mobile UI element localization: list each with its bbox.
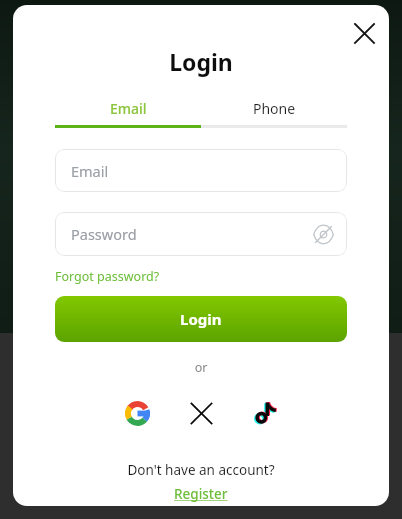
button[interactable]: Email <box>55 149 347 192</box>
staticText: Login <box>180 309 222 329</box>
button[interactable]: Register <box>174 485 228 503</box>
button[interactable]: Login <box>55 296 347 342</box>
button[interactable]: Email <box>55 99 201 118</box>
button[interactable]: Phone <box>201 99 347 118</box>
staticText: Register <box>174 485 228 503</box>
staticText: Email <box>71 161 109 181</box>
staticText: Forgot password? <box>55 268 160 285</box>
button[interactable]: Show password <box>307 218 339 250</box>
button[interactable]: Forgot password? <box>55 268 160 285</box>
button[interactable]: Sign in with X <box>179 391 223 435</box>
staticText: Password <box>71 224 137 244</box>
staticText: Don't have an account? <box>13 461 389 479</box>
staticText: or <box>13 359 389 376</box>
staticText: Phone <box>253 99 296 118</box>
button[interactable]: Close <box>343 12 385 54</box>
button[interactable]: Password <box>55 212 347 256</box>
button[interactable]: Sign in with Google <box>115 391 159 435</box>
button[interactable]: Sign in with TikTok <box>243 391 287 435</box>
staticText: Login <box>13 46 389 77</box>
staticText: Email <box>110 99 147 118</box>
